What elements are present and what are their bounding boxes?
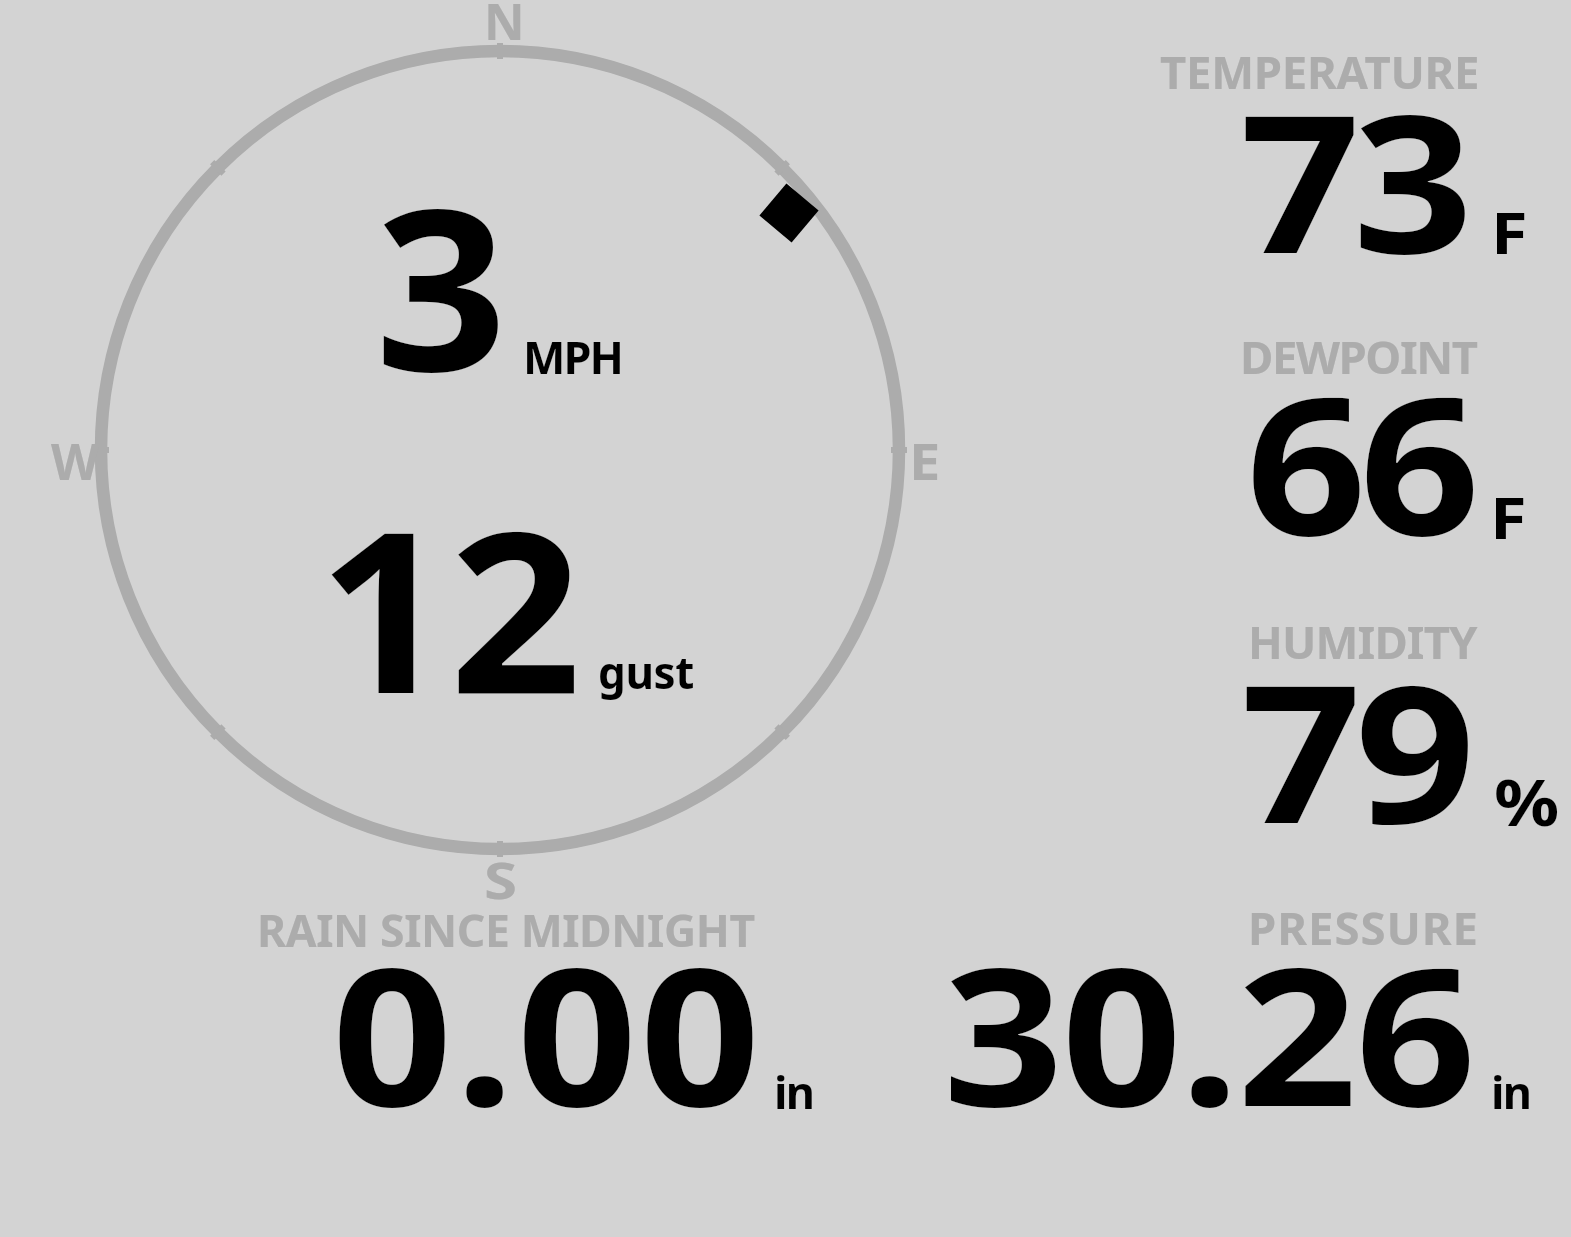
button[interactable]: Dew point [1140, 320, 1560, 550]
staticText: TEMPERATURE [1160, 40, 1480, 102]
staticText: PRESSURE [1248, 896, 1479, 958]
staticText: W [51, 427, 100, 495]
staticText: in [774, 1061, 814, 1122]
button[interactable]: Wind speed and direction [60, 20, 940, 890]
staticText: gust [598, 642, 695, 702]
button[interactable]: Humidity [1140, 600, 1560, 840]
staticText: S [484, 846, 518, 914]
staticText: 3 [375, 134, 507, 436]
staticText: 79 [1241, 619, 1470, 878]
staticText: 12 [318, 456, 582, 758]
other: Wind direction [759, 183, 819, 243]
staticText: E [909, 427, 940, 495]
staticText: % [1494, 758, 1559, 845]
button[interactable]: Pressure [930, 895, 1540, 1130]
staticText: in [1491, 1061, 1531, 1122]
staticText: 73 [1240, 49, 1466, 308]
staticText: 66 [1246, 331, 1474, 590]
staticText: 0.00 [332, 902, 763, 1161]
button[interactable]: Rain since midnight [240, 900, 840, 1130]
staticText: N [484, 0, 525, 55]
staticText: RAIN SINCE MIDNIGHT [257, 899, 755, 960]
staticText: F [1491, 192, 1528, 271]
staticText: F [1490, 477, 1527, 556]
staticText: MPH [523, 326, 623, 387]
staticText: DEWPOINT [1240, 325, 1477, 387]
staticText: 30.26 [943, 902, 1474, 1161]
staticText: HUMIDITY [1248, 610, 1477, 672]
button[interactable]: Temperature [1140, 40, 1560, 260]
